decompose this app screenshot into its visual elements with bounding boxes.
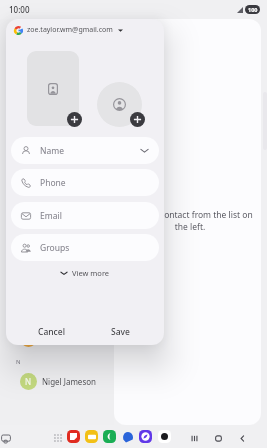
button[interactable]: Screenshot xyxy=(1,434,11,444)
button[interactable]: Recent apps xyxy=(189,433,200,444)
button[interactable]: Email xyxy=(11,202,159,229)
staticText: zoe.taylor.wm@gmail.com xyxy=(27,25,113,35)
staticText: Nigel Jameson xyxy=(42,376,96,387)
button[interactable]: Add avatar xyxy=(97,82,142,127)
staticText: Cancel xyxy=(38,326,65,338)
staticText: 10:00 xyxy=(9,4,30,15)
button[interactable]: Add photo xyxy=(27,51,79,126)
button[interactable]: Browser xyxy=(139,430,152,443)
button[interactable]: Save xyxy=(104,322,137,342)
button[interactable]: View more xyxy=(6,266,164,280)
button[interactable]: Home xyxy=(213,433,224,444)
button[interactable]: Messages xyxy=(121,430,134,443)
staticText: Mia Scott xyxy=(42,333,77,344)
button[interactable]: Files xyxy=(85,430,98,443)
button[interactable]: Groups xyxy=(11,234,159,261)
button[interactable]: Add photo xyxy=(67,112,82,127)
button[interactable]: N xyxy=(0,369,114,393)
staticText: Email xyxy=(40,210,62,222)
button[interactable]: Add avatar xyxy=(130,112,145,127)
button[interactable]: Phone xyxy=(103,430,116,443)
button[interactable]: Keep notes xyxy=(67,430,80,443)
staticText: N xyxy=(16,358,21,366)
button[interactable]: Phone xyxy=(11,169,159,196)
button[interactable]: Back xyxy=(237,433,248,444)
staticText: N xyxy=(25,376,32,387)
staticText: View more xyxy=(72,268,110,278)
button[interactable]: Name xyxy=(11,137,159,164)
staticText: 100 xyxy=(248,6,258,13)
staticText: Groups xyxy=(40,242,70,254)
button[interactable]: Camera xyxy=(158,430,171,443)
button[interactable]: M xyxy=(0,326,114,350)
staticText: Save xyxy=(111,326,130,338)
button[interactable]: Cancel xyxy=(31,322,72,342)
button[interactable]: zoe.taylor.wm@gmail.com xyxy=(14,25,123,35)
staticText: Select a contact from the list on the le… xyxy=(127,209,253,233)
staticText: Name xyxy=(40,145,64,157)
staticText: Phone xyxy=(40,177,66,189)
